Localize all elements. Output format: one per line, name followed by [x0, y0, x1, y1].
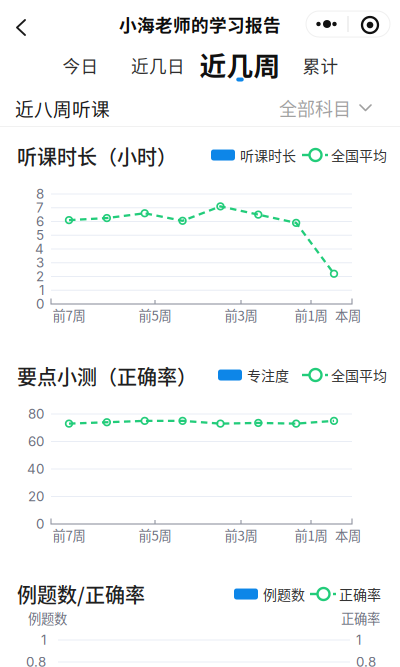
staticText: 要点小测（正确率）: [17, 361, 197, 390]
staticText: 1: [41, 632, 46, 648]
button[interactable]: 累计: [276, 49, 364, 91]
staticText: 1: [356, 632, 361, 648]
staticText: 前1周: [294, 525, 327, 545]
staticText: 前3周: [224, 305, 257, 325]
staticText: 听课时长: [240, 145, 296, 165]
staticText: 近八周听课: [15, 94, 110, 121]
button[interactable]: 今日: [36, 49, 124, 91]
staticText: 前1周: [294, 305, 327, 325]
staticText: 专注度: [247, 365, 289, 385]
button[interactable]: 近几日: [114, 49, 202, 91]
staticText: 0.8: [26, 654, 46, 667]
button[interactable]: 更多: [306, 11, 348, 37]
staticText: 4: [35, 241, 44, 257]
staticText: 0.8: [356, 654, 376, 667]
staticText: 前5周: [138, 305, 171, 325]
staticText: 5: [36, 227, 44, 243]
staticText: 40: [27, 461, 44, 477]
staticText: 6: [36, 213, 44, 229]
staticText: 正确率: [339, 584, 381, 604]
staticText: 7: [36, 200, 44, 216]
staticText: 本周: [335, 525, 361, 545]
staticText: 3: [36, 255, 44, 271]
button[interactable]: 全部科目: [277, 91, 387, 125]
staticText: 0: [36, 516, 44, 532]
staticText: 小海老师的学习报告: [119, 11, 281, 37]
staticText: 前7周: [52, 305, 85, 325]
staticText: 近几周: [199, 45, 280, 83]
button[interactable]: 返回: [0, 2, 44, 46]
staticText: 2: [36, 268, 44, 284]
staticText: 例题数: [28, 608, 67, 628]
button[interactable]: 近几周: [196, 48, 284, 90]
staticText: 8: [36, 186, 44, 202]
staticText: 全部科目: [279, 95, 351, 121]
staticText: 80: [28, 406, 44, 422]
staticText: 今日: [62, 52, 98, 78]
staticText: 累计: [302, 52, 338, 78]
staticText: 60: [28, 433, 44, 449]
staticText: 0: [36, 296, 44, 312]
staticText: 20: [28, 488, 44, 504]
staticText: 例题数/正确率: [17, 579, 145, 608]
staticText: 前3周: [224, 525, 257, 545]
staticText: 全国平均: [331, 365, 387, 385]
staticText: 1: [39, 282, 44, 298]
staticText: 听课时长（小时）: [17, 141, 177, 170]
staticText: 前5周: [138, 525, 171, 545]
staticText: 本周: [335, 305, 361, 325]
staticText: 前7周: [52, 525, 85, 545]
staticText: 全国平均: [331, 145, 387, 165]
button[interactable]: 关闭: [350, 12, 392, 38]
staticText: 正确率: [341, 608, 380, 628]
staticText: 例题数: [263, 584, 305, 604]
staticText: 近几日: [131, 52, 185, 78]
